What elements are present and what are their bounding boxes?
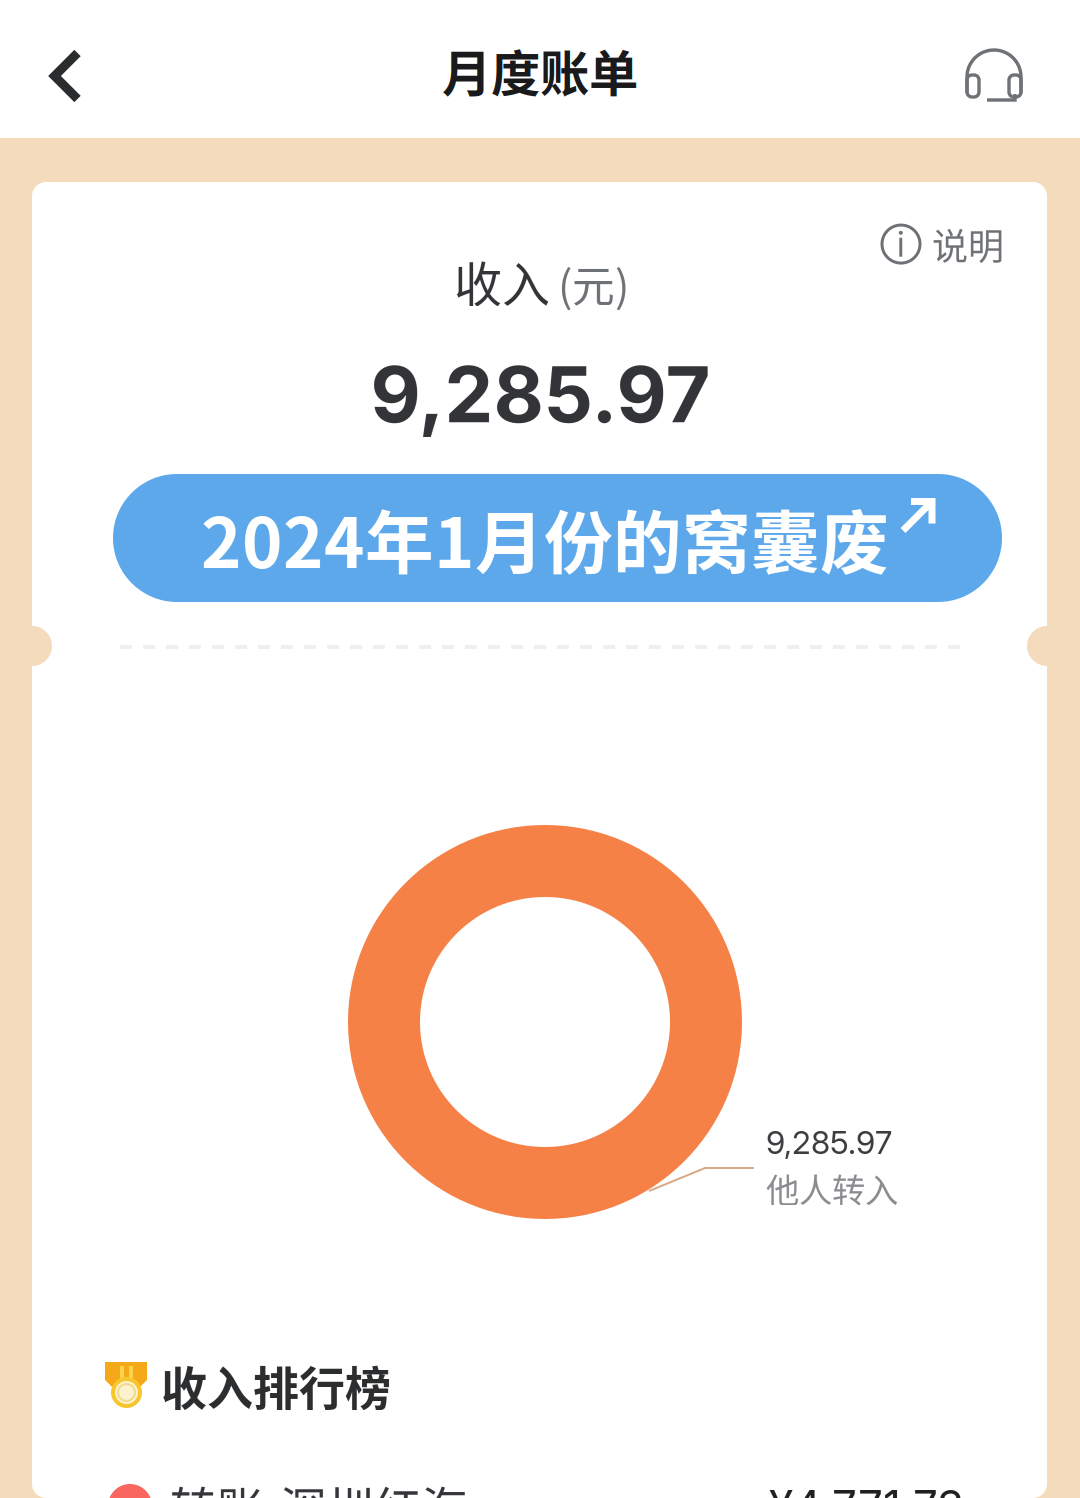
- staticText: 他人转入: [766, 1164, 898, 1212]
- staticText: i: [897, 223, 905, 265]
- button[interactable]: 2024年1月份的窝囊废: [113, 474, 1002, 602]
- staticText: 转账-深圳红海…: [170, 1472, 515, 1498]
- staticText: 9,285.97: [766, 1123, 892, 1162]
- staticText: 月度账单: [442, 34, 638, 106]
- staticText: 说明: [932, 218, 1004, 270]
- staticText: 收入: [454, 246, 550, 316]
- staticText: (元): [558, 252, 629, 314]
- staticText: 9,285.97: [370, 347, 710, 441]
- button[interactable]: 转账-深圳红海…: [108, 1471, 964, 1498]
- staticText: 2024年1月份的窝囊废: [201, 488, 889, 588]
- button[interactable]: i: [870, 206, 1016, 282]
- button[interactable]: Customer service: [939, 21, 1049, 131]
- button[interactable]: Back: [11, 21, 121, 131]
- staticText: 收入排行榜: [161, 1352, 391, 1418]
- staticText: ¥4,771.73: [769, 1479, 964, 1498]
